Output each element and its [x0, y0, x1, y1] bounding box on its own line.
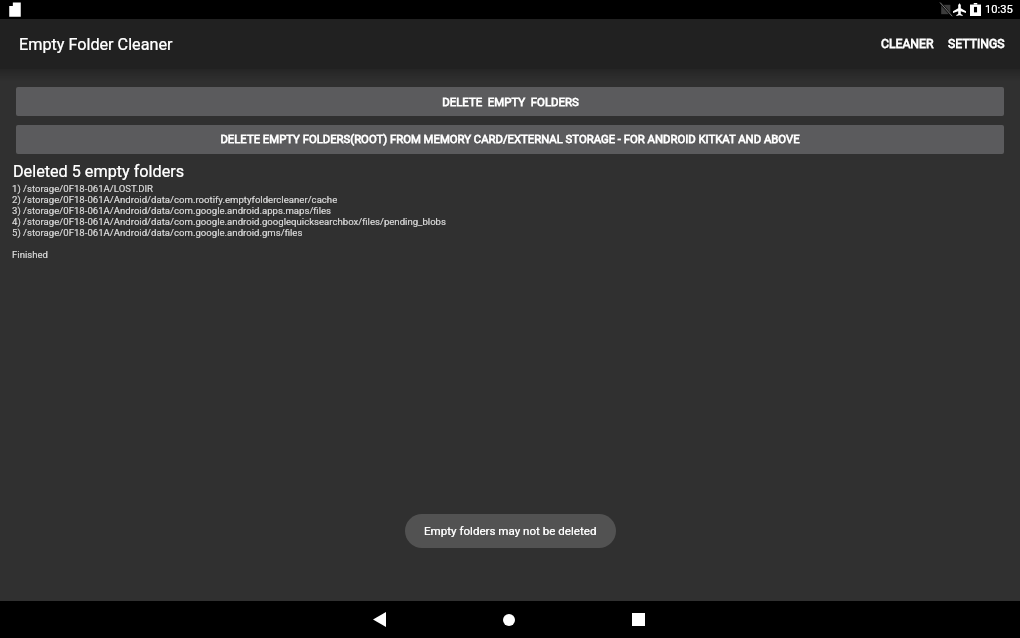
staticText: Empty folders may not be deleted: [424, 524, 597, 538]
staticText: 1) /storage/0F18-061A/LOST.DIR: [12, 183, 153, 194]
button[interactable]: CLEANER: [874, 19, 941, 69]
button[interactable]: SETTINGS: [941, 19, 1012, 69]
staticText: 2) /storage/0F18-061A/Android/data/com.r…: [12, 194, 338, 205]
button[interactable]: Recents: [593, 601, 683, 638]
staticText: 4) /storage/0F18-061A/Android/data/com.g…: [12, 216, 446, 227]
staticText: DELETE EMPTY FOLDERS: [442, 95, 579, 108]
staticText: 3) /storage/0F18-061A/Android/data/com.g…: [12, 205, 332, 216]
button[interactable]: Home: [464, 601, 554, 638]
staticText: CLEANER: [881, 37, 934, 51]
button[interactable]: DELETE EMPTY FOLDERS: [16, 87, 1004, 116]
staticText: Empty Folder Cleaner: [19, 35, 173, 54]
button[interactable]: Empty folders may not be deleted: [405, 514, 616, 548]
staticText: Finished: [12, 249, 48, 260]
staticText: DELETE EMPTY FOLDERS(ROOT) FROM MEMORY C…: [220, 133, 800, 146]
button[interactable]: DELETE EMPTY FOLDERS(ROOT) FROM MEMORY C…: [16, 125, 1004, 154]
staticText: Deleted 5 empty folders: [13, 162, 185, 181]
staticText: SETTINGS: [948, 37, 1005, 51]
staticText: 5) /storage/0F18-061A/Android/data/com.g…: [12, 227, 303, 238]
staticText: 10:35: [985, 3, 1013, 16]
button[interactable]: Back: [334, 601, 424, 638]
